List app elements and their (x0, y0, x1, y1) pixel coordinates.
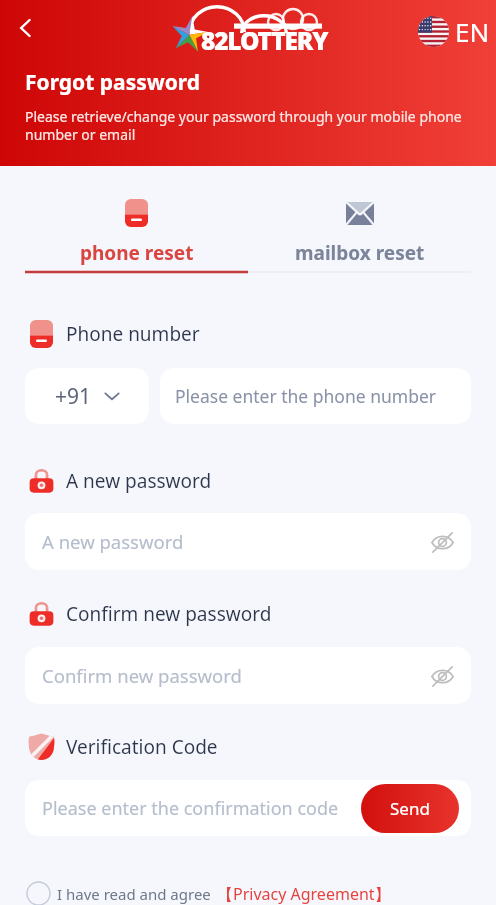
staticText: 82LOTTERY (201, 24, 328, 57)
button[interactable]: mailbox reset (248, 166, 471, 266)
button[interactable]: Back (8, 10, 44, 46)
staticText: I have read and agree (57, 884, 211, 904)
staticText: EN (455, 14, 490, 49)
button[interactable]: +91 (25, 368, 149, 424)
staticText: A new password (66, 468, 212, 494)
button[interactable]: Show password (427, 527, 457, 557)
staticText: +91 (55, 382, 92, 411)
staticText: Send (390, 797, 430, 820)
button[interactable]: Show password (427, 661, 457, 691)
button[interactable]: phone reset (25, 166, 248, 266)
staticText: Please enter the confirmation code (42, 796, 339, 821)
button[interactable]: Send (361, 784, 459, 833)
staticText: A new password (42, 529, 184, 554)
staticText: Confirm new password (66, 601, 272, 627)
button[interactable]: Please enter the phone number (160, 368, 471, 424)
staticText: mailbox reset (295, 240, 425, 266)
staticText: Phone number (66, 321, 200, 347)
button[interactable]: Please enter the confirmation code (25, 780, 471, 836)
staticText: 【Privacy Agreement】 (217, 883, 391, 905)
staticText: Verification Code (66, 734, 218, 760)
button[interactable]: I have read and agree (26, 881, 391, 905)
staticText: Please enter the phone number (175, 384, 437, 408)
button[interactable]: Confirm new password (25, 647, 471, 704)
staticText: Please retrieve/change your password thr… (25, 107, 467, 144)
button[interactable]: A new password (25, 513, 471, 570)
staticText: Forgot password (25, 68, 201, 97)
button[interactable]: Change language, English (418, 14, 490, 49)
staticText: Confirm new password (42, 663, 242, 688)
staticText: phone reset (80, 240, 194, 266)
